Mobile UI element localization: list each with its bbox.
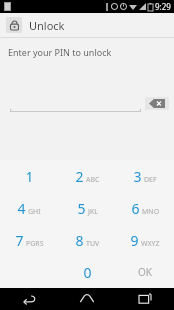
button[interactable]: 4 [0, 192, 58, 224]
staticText: 9:29 [155, 1, 171, 12]
button[interactable]: 5 [58, 192, 116, 224]
button[interactable]: 2 [58, 160, 116, 192]
staticText: 4 [17, 199, 26, 218]
staticText: PGRS [26, 239, 44, 249]
button[interactable]: 3 [116, 160, 174, 192]
staticText: JKL [88, 207, 98, 217]
button[interactable]: Home [58, 288, 116, 310]
button[interactable]: 8 [58, 224, 116, 256]
button[interactable]: 9 [116, 224, 174, 256]
other: Lock [6, 17, 22, 33]
staticText: 2 [75, 167, 84, 186]
button[interactable]: 1 [0, 160, 58, 192]
staticText: 5 [77, 199, 86, 218]
button[interactable]: 0 [58, 256, 116, 288]
button[interactable]: 7 [0, 224, 58, 256]
staticText: 8 [75, 231, 84, 250]
staticText: OK [138, 265, 152, 279]
button[interactable]: Delete [145, 97, 169, 110]
staticText: GHI [28, 207, 41, 217]
button[interactable]: OK [116, 256, 174, 288]
staticText: 9 [130, 231, 139, 250]
staticText: MNO [142, 207, 160, 217]
staticText: 0 [83, 263, 92, 282]
button[interactable] [10, 93, 141, 113]
button[interactable]: 6 [116, 192, 174, 224]
button[interactable]: Recent apps [116, 288, 174, 310]
staticText: 3 [133, 167, 142, 186]
staticText: TUV [86, 239, 100, 249]
staticText: Unlock [29, 18, 65, 33]
staticText: 6 [131, 199, 140, 218]
staticText: 1 [25, 167, 34, 186]
staticText: WXYZ [141, 239, 160, 249]
staticText: ABC [86, 175, 100, 185]
button[interactable]: Back [0, 288, 58, 310]
staticText: Enter your PIN to unlock [8, 46, 112, 58]
staticText: 7 [15, 231, 24, 250]
staticText: DEF [144, 175, 157, 185]
